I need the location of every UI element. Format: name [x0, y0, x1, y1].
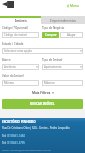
staticText: Email: contato@escritoriopinheiro.com.br: [2, 148, 51, 151]
button[interactable]: Apartamento: [42, 64, 83, 70]
button[interactable]: BUSCAR IMÓVEL: [2, 99, 83, 109]
staticText: Empreendimentos: [50, 19, 77, 23]
staticText: Rua Dr. Cristiano Otoni, 624 - Centro - …: [2, 126, 70, 130]
staticText: Código (*Opcional): [2, 26, 29, 30]
staticText: Menu: [70, 4, 79, 8]
button[interactable]: Tel:: [2, 141, 25, 145]
staticText: Tipo de Imóvel: [42, 58, 63, 62]
button[interactable]: Anchieta: [2, 64, 39, 70]
button[interactable]: Alugar: [60, 32, 83, 38]
button[interactable]: Comprar: [42, 32, 59, 38]
staticText: Imóveis: [15, 19, 27, 23]
staticText: Estado / Cidade: [2, 42, 24, 46]
button[interactable]: Código do imóvel: [2, 32, 39, 38]
staticText: (31)3661-1484: [7, 134, 25, 138]
staticText: Código do imóvel: [4, 33, 27, 37]
button[interactable]: Menu: [67, 4, 79, 8]
staticText: ESCRITÓRIO PINHEIRO: [2, 120, 36, 124]
staticText: Tel:: [2, 141, 7, 145]
staticText: Mínimo: [4, 81, 15, 85]
staticText: Apartamento: [44, 65, 62, 69]
staticText: Máximo: [44, 81, 55, 85]
staticText: (31)3661-5795: [7, 141, 25, 145]
button[interactable]: Mínimo: [2, 80, 39, 86]
button[interactable]: Máximo: [42, 80, 83, 86]
staticText: Mais Filtros: [32, 91, 51, 95]
button[interactable]: Escritório Pinheiro logo: [2, 1, 14, 8]
button[interactable]: Mais Filtros: [32, 91, 54, 95]
staticText: Bairro: [2, 58, 11, 62]
button[interactable]: Selecione uma opção: [2, 48, 83, 54]
button[interactable]: Empreendimentos: [41, 18, 85, 24]
staticText: Selecione uma opção: [4, 49, 32, 53]
staticText: Comprar: [45, 33, 57, 37]
button[interactable]: Tel:: [2, 134, 25, 138]
staticText: BUSCAR IMÓVEL: [30, 102, 55, 106]
staticText: Anchieta: [4, 65, 16, 69]
staticText: Tipo de Negócio: [42, 26, 65, 30]
button[interactable]: Imóveis: [0, 18, 41, 24]
staticText: Tel:: [2, 134, 7, 138]
staticText: Alugar: [67, 33, 76, 37]
staticText: Valor do Imóvel: [2, 74, 24, 78]
